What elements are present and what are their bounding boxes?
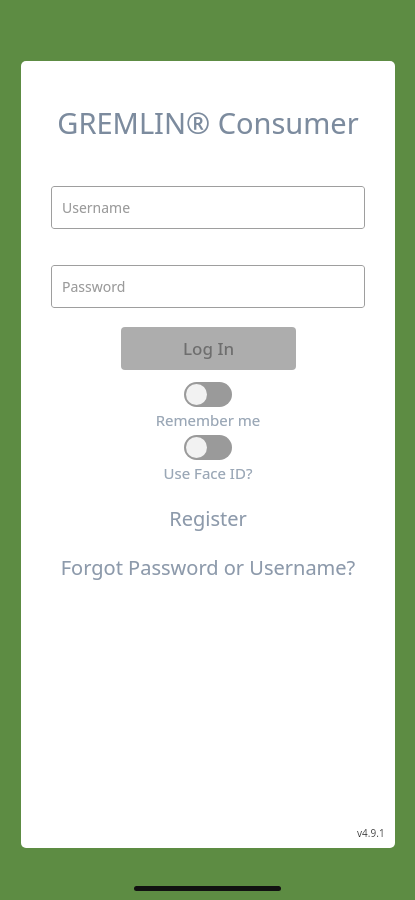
button[interactable]: Use Face ID toggle [184, 435, 232, 460]
staticText: GREMLIN® Consumer [21, 103, 395, 142]
button[interactable]: Password [51, 265, 365, 308]
button[interactable]: Register [21, 505, 395, 532]
button[interactable]: Remember me toggle [184, 382, 232, 407]
staticText: Forgot Password or Username? [21, 554, 395, 581]
button[interactable]: Log In [121, 327, 296, 370]
button[interactable]: Username [51, 186, 365, 229]
staticText: Password [62, 277, 126, 296]
staticText: Remember me [21, 410, 395, 430]
button[interactable]: Forgot Password or Username? [21, 554, 395, 581]
staticText: Username [62, 198, 131, 217]
staticText: Use Face ID? [21, 463, 395, 483]
staticText: Register [21, 505, 395, 532]
staticText: v4.9.1 [357, 826, 385, 840]
staticText: Log In [183, 337, 235, 360]
